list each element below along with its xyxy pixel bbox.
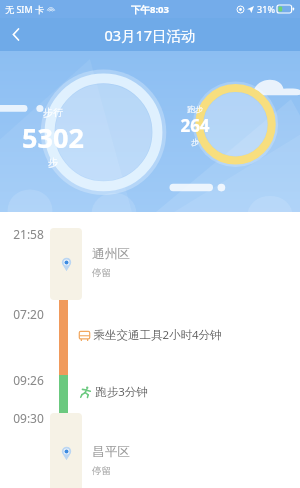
staticText: 跑步3分钟 [95, 384, 148, 400]
staticText: 停留 [92, 267, 111, 279]
staticText: 昌平区 [92, 444, 130, 460]
staticText: 步行 [43, 106, 63, 119]
staticText: 下午8:03 [131, 3, 169, 16]
staticText: 264 [180, 114, 210, 137]
button[interactable]: 昌平区 停留 [50, 413, 82, 488]
button[interactable]: 昌平区 [92, 444, 130, 477]
staticText: 07:20 [13, 306, 44, 322]
staticText: 乘坐交通工具2小时4分钟 [93, 327, 222, 343]
button[interactable]: 通州区 [92, 246, 130, 279]
staticText: 31% [257, 3, 275, 15]
button[interactable]: 乘坐交通工具2小时4分钟 [78, 327, 222, 343]
staticText: 停留 [92, 465, 111, 477]
button[interactable]: Back [0, 18, 33, 51]
staticText: 跑步 [187, 104, 203, 114]
staticText: 无 SIM 卡 [5, 3, 44, 15]
staticText: 步 [191, 137, 199, 147]
staticText: 09:26 [13, 372, 44, 388]
staticText: 步 [48, 156, 58, 169]
staticText: 21:58 [13, 226, 44, 242]
button[interactable]: 通州区 停留 [50, 228, 82, 300]
staticText: 通州区 [92, 246, 130, 262]
staticText: 5302 [22, 119, 84, 156]
staticText: 03月17日活动 [104, 25, 196, 45]
staticText: 09:30 [13, 410, 44, 426]
button[interactable]: 跑步3分钟 [80, 384, 148, 400]
